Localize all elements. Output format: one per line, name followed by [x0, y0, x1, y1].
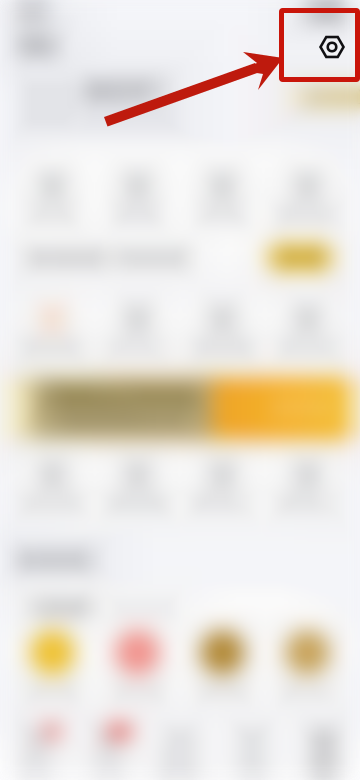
staticText: 待评价: [200, 206, 245, 224]
staticText: 158****2046: [85, 111, 173, 130]
staticText: 微信用户: [85, 78, 165, 103]
button[interactable]: 分类: [72, 723, 144, 780]
button[interactable]: 待评价: [180, 174, 265, 224]
button[interactable]: 浏览记录: [265, 307, 350, 357]
staticText: 我的优惠券 3张待使用: [27, 247, 188, 268]
staticText: 9:41: [18, 2, 49, 24]
staticText: 设置中心: [277, 495, 337, 513]
button[interactable]: 地址管理: [10, 463, 95, 513]
button[interactable]: 我的收藏: [180, 307, 265, 357]
staticText: 购物车: [160, 759, 199, 775]
staticText: 我的: [18, 34, 58, 58]
staticText: 去使用: [276, 248, 324, 267]
button[interactable]: 待收货: [95, 174, 180, 224]
staticText: 水果生鲜: [111, 685, 163, 701]
button[interactable]: Settings: [0, 0, 360, 780]
button[interactable]: 帮助中心: [180, 463, 265, 513]
button[interactable]: 水果生鲜: [95, 631, 180, 701]
button[interactable]: 我的: [288, 723, 360, 780]
staticText: 美妆个护: [281, 685, 333, 701]
button[interactable]: 购物车: [144, 723, 216, 780]
staticText: 立即开通: [264, 398, 332, 419]
staticText: 开通会员立享折扣: [46, 385, 198, 408]
button[interactable]: 休闲零食: [10, 631, 95, 701]
button[interactable]: 我的钱包: [10, 307, 95, 357]
staticText: 日用百货: [196, 685, 248, 701]
button[interactable]: 我的客服: [95, 463, 180, 513]
staticText: 帮助中心: [192, 495, 252, 513]
staticText: 每月最高省 200 元: [61, 412, 183, 432]
staticText: 我的: [311, 759, 337, 775]
button[interactable]: 会员中心: [288, 85, 360, 109]
button[interactable]: 会员中心: [95, 307, 180, 357]
button[interactable]: 日用百货: [180, 631, 265, 701]
staticText: 为你推荐: [28, 598, 92, 618]
button[interactable]: 消息: [216, 723, 288, 780]
button[interactable]: 待付款: [10, 174, 95, 224]
button[interactable]: 去使用: [267, 244, 333, 271]
button[interactable]: 美妆个护: [265, 631, 350, 701]
button[interactable]: 退款售后: [265, 174, 350, 224]
staticText: 休闲零食: [26, 685, 78, 701]
staticText: 会员中心: [304, 87, 360, 107]
staticText: 猜你喜欢: [18, 549, 94, 572]
button[interactable]: 设置中心: [265, 463, 350, 513]
staticText: 分类: [95, 759, 121, 775]
button[interactable]: 首页: [0, 723, 72, 780]
